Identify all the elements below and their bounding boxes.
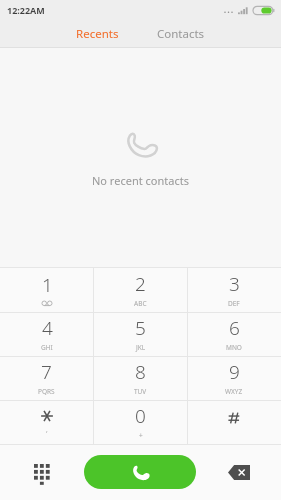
button[interactable]: Keypad: [0, 444, 84, 500]
button[interactable]: [187, 401, 281, 444]
staticText: GHI: [41, 343, 53, 352]
staticText: WXYZ: [225, 387, 243, 396]
staticText: ABC: [134, 299, 147, 308]
staticText: MNO: [226, 343, 242, 352]
staticText: No recent contacts: [92, 173, 189, 188]
staticText: PQRS: [38, 387, 55, 396]
button[interactable]: Call: [84, 455, 196, 489]
staticText: TUV: [134, 387, 147, 396]
staticText: +: [139, 431, 143, 440]
staticText: 3: [229, 271, 240, 297]
staticText: 6: [229, 315, 240, 341]
button[interactable]: 5: [93, 313, 187, 356]
button[interactable]: 8: [93, 357, 187, 400]
staticText: ,: [46, 425, 48, 434]
button[interactable]: 4: [0, 313, 93, 356]
button[interactable]: ,: [0, 401, 93, 444]
staticText: Contacts: [157, 26, 205, 42]
button[interactable]: 2: [93, 268, 187, 312]
button[interactable]: 1: [0, 268, 93, 312]
staticText: 9: [229, 359, 240, 385]
button[interactable]: Contacts: [145, 22, 217, 46]
staticText: 4: [42, 315, 53, 341]
staticText: 1: [42, 272, 53, 298]
staticText: 2: [135, 271, 146, 297]
button[interactable]: 9: [187, 357, 281, 400]
button[interactable]: Delete: [196, 444, 281, 500]
staticText: JKL: [136, 343, 146, 352]
staticText: 0: [135, 403, 146, 429]
button[interactable]: 0: [93, 401, 187, 444]
button[interactable]: 3: [187, 268, 281, 312]
button[interactable]: 6: [187, 313, 281, 356]
staticText: Recents: [76, 26, 119, 42]
staticText: 5: [135, 315, 146, 341]
staticText: DEF: [228, 299, 240, 308]
staticText: 8: [135, 359, 146, 385]
button[interactable]: 7: [0, 357, 93, 400]
staticText: 7: [41, 359, 52, 385]
button[interactable]: Recents: [64, 22, 131, 46]
staticText: 12:22AM: [7, 4, 45, 16]
